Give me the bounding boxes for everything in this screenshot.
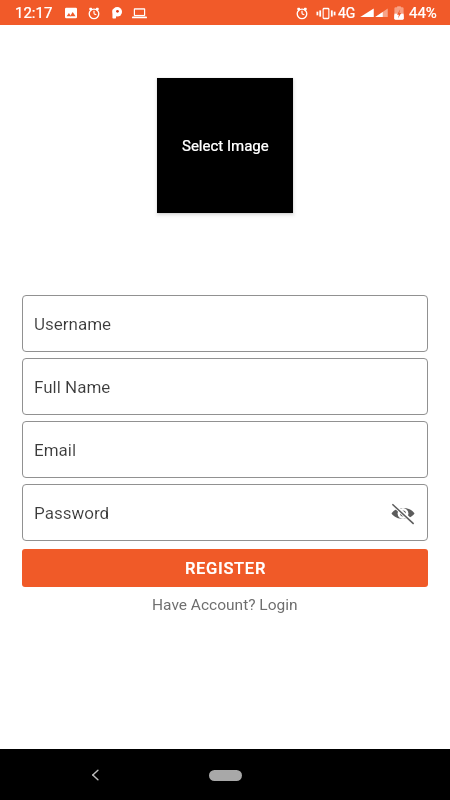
button[interactable]: Select Image <box>157 78 293 213</box>
button[interactable]: Back <box>78 757 114 793</box>
staticText: 44% <box>409 4 437 22</box>
staticText: REGISTER <box>185 559 266 578</box>
staticText: Password <box>34 503 110 523</box>
button[interactable]: Password <box>22 484 428 541</box>
button[interactable]: Email <box>22 421 428 478</box>
button[interactable]: Have Account? Login <box>152 596 298 614</box>
staticText: 4G <box>338 5 356 21</box>
staticText: Select Image <box>182 137 269 155</box>
button[interactable]: Full Name <box>22 358 428 415</box>
staticText: Username <box>34 314 112 334</box>
staticText: Email <box>34 440 77 460</box>
button[interactable]: REGISTER <box>22 549 428 587</box>
button[interactable]: Home <box>207 765 243 785</box>
button[interactable]: Username <box>22 295 428 352</box>
staticText: 12:17 <box>15 4 53 22</box>
staticText: Full Name <box>34 377 111 397</box>
button[interactable]: Toggle password visibility <box>389 499 417 527</box>
